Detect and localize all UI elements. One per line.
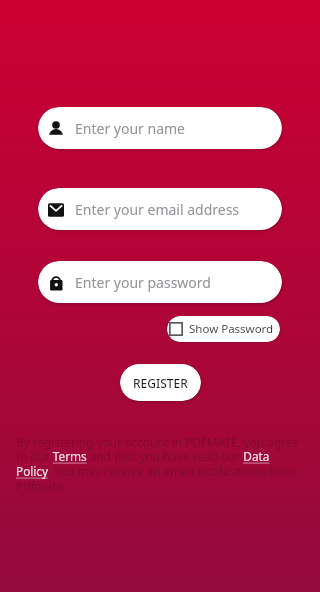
staticText: By registering your account in PDFMATE, … <box>16 434 300 495</box>
button[interactable]: Enter your password <box>38 261 282 303</box>
staticText: Enter your name <box>75 119 185 138</box>
button[interactable]: Enter your name <box>38 107 282 149</box>
staticText: Show Password <box>189 321 274 337</box>
staticText: Enter your password <box>75 273 211 292</box>
staticText: Enter your email address <box>75 200 240 219</box>
button[interactable]: Enter your email address <box>38 188 282 230</box>
staticText: REGISTER <box>133 375 188 391</box>
button[interactable]: Show Password <box>167 316 280 342</box>
button[interactable]: REGISTER <box>120 364 201 401</box>
